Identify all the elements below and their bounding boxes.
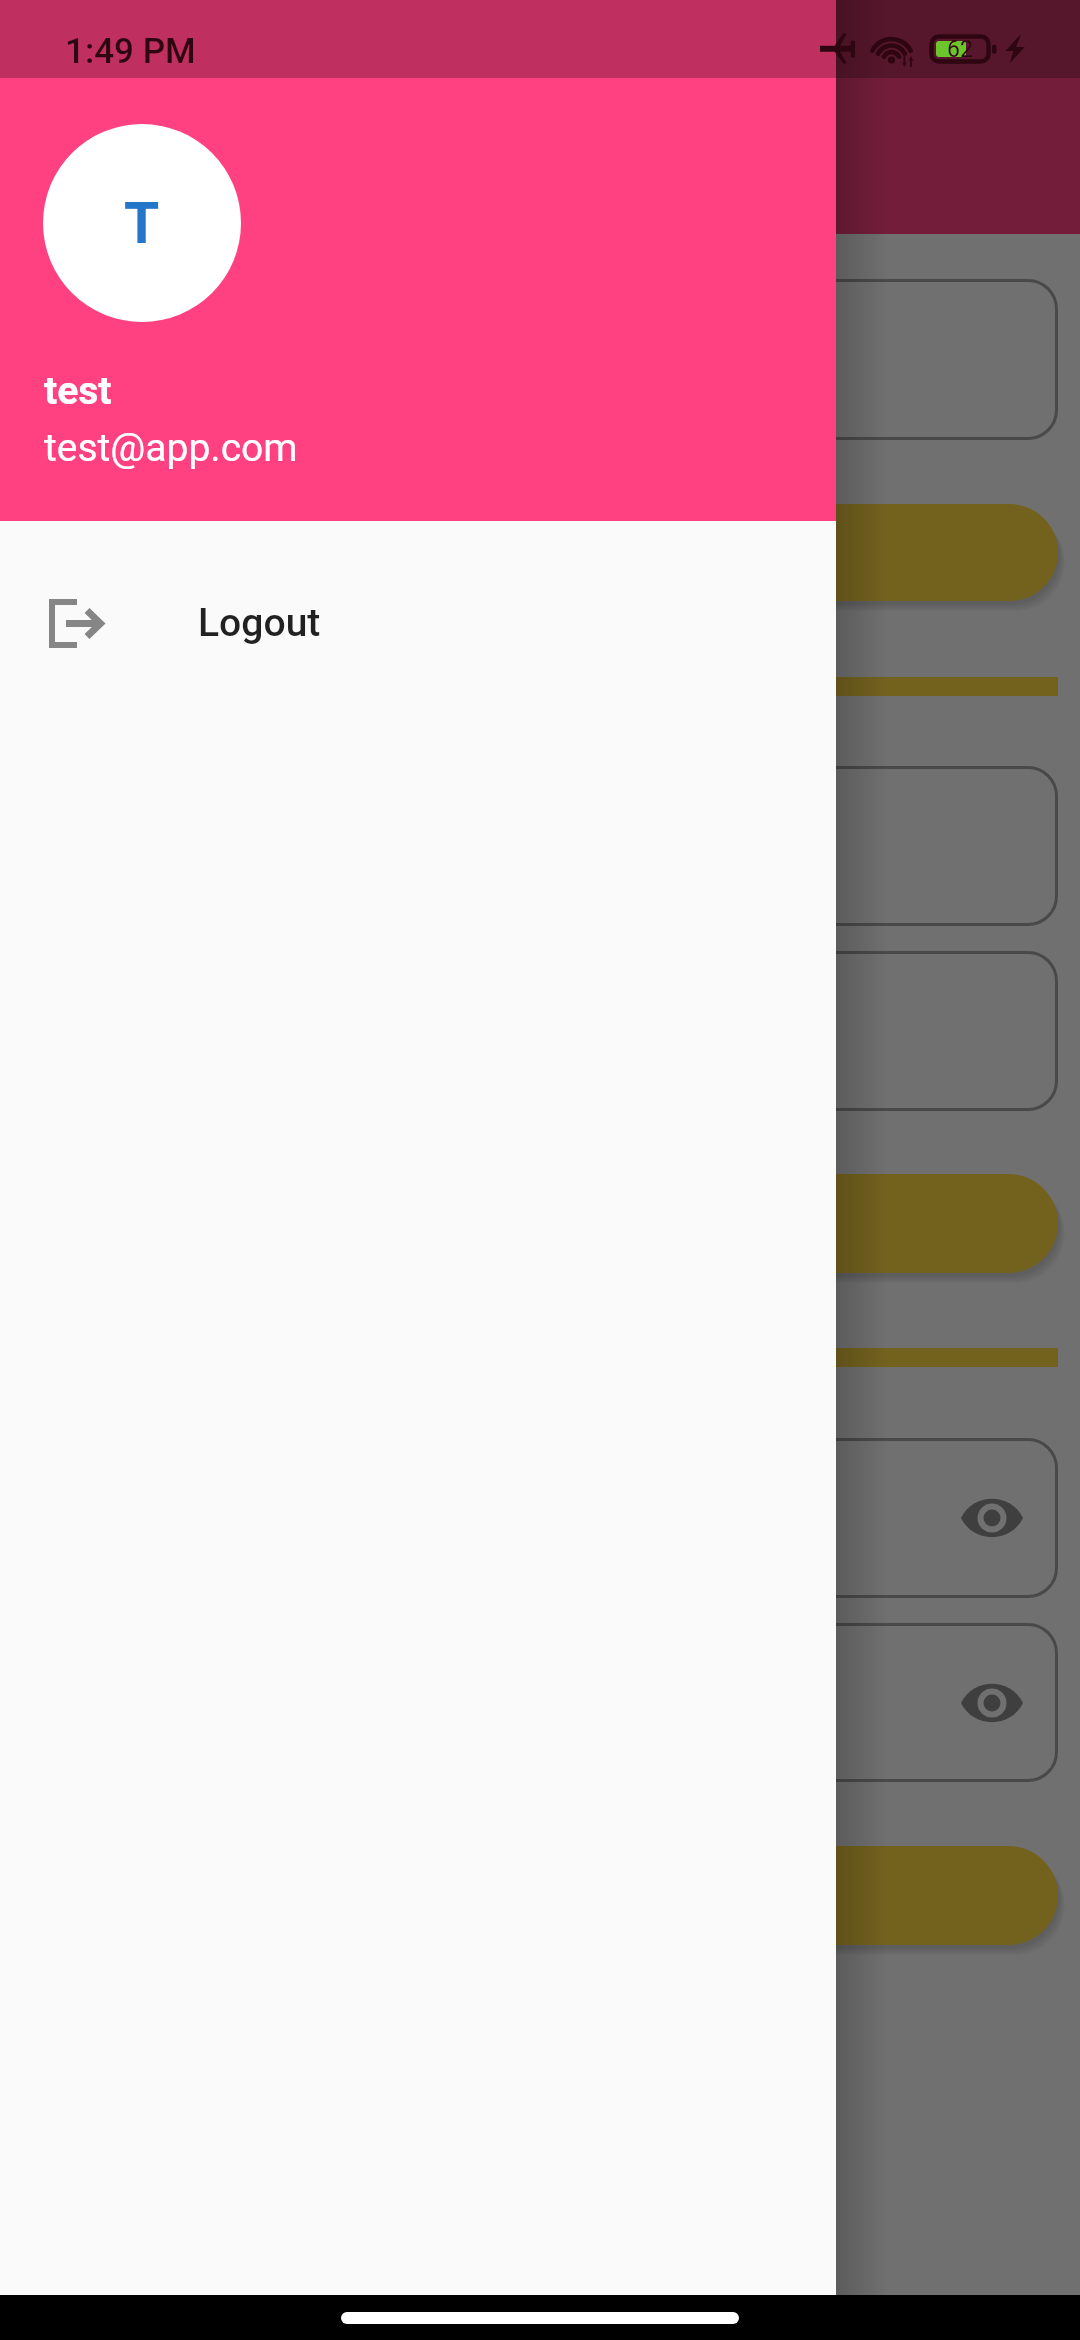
button[interactable]: Submit: [22, 504, 1058, 601]
button[interactable]: Profile picture: [43, 124, 241, 322]
button[interactable]: Toggle password visibility: [961, 1496, 1023, 1540]
staticText: T: [124, 190, 160, 257]
staticText: test: [44, 368, 112, 414]
button[interactable]: Submit: [22, 1846, 1058, 1945]
button[interactable]: Home: [341, 2312, 739, 2324]
button[interactable]: Logout: [0, 521, 836, 721]
button[interactable]: Toggle password visibility: [961, 1681, 1023, 1725]
staticText: 1:49 PM: [65, 31, 196, 72]
button[interactable]: Close navigation drawer: [0, 0, 1080, 2295]
button[interactable]: Submit: [22, 1174, 1058, 1273]
staticText: Logout: [198, 600, 321, 646]
staticText: 62: [947, 36, 973, 63]
staticText: test@app.com: [44, 425, 298, 471]
